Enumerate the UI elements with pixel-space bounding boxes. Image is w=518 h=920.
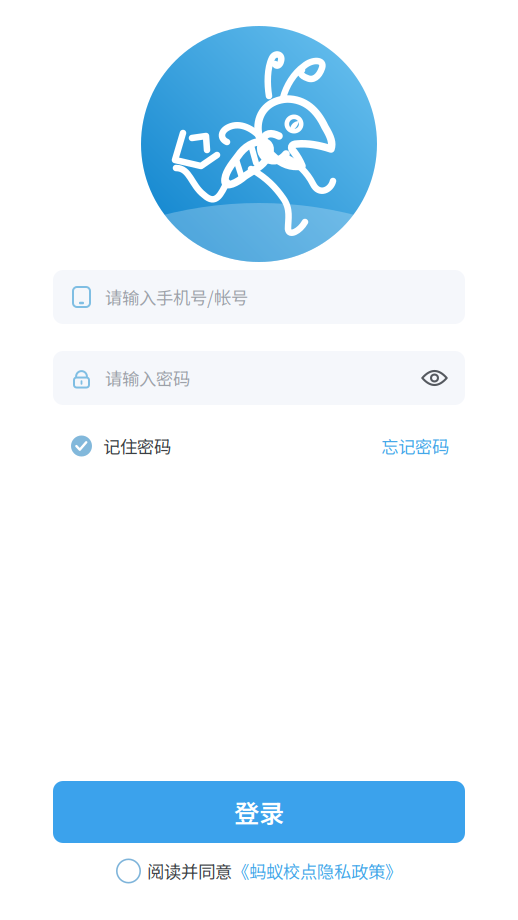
staticText: 《蚂蚁校点隐私政策》	[232, 858, 402, 884]
staticText: 忘记密码	[381, 433, 449, 459]
button[interactable]: 请输入手机号/帐号	[0, 270, 518, 324]
staticText: 阅读并同意	[147, 858, 232, 884]
staticText: 请输入密码	[105, 365, 190, 391]
staticText: 请输入手机号/帐号	[105, 284, 248, 310]
button[interactable]: 请输入密码	[0, 351, 518, 405]
button[interactable]: 阅读并同意	[147, 858, 402, 884]
button[interactable]: 记住密码	[71, 434, 171, 458]
button[interactable]: 忘记密码	[381, 434, 449, 458]
staticText: 记住密码	[103, 433, 171, 459]
button[interactable]: 同意隐私政策	[116, 858, 141, 883]
staticText: 登录	[234, 794, 284, 830]
button[interactable]: 登录	[0, 781, 518, 843]
